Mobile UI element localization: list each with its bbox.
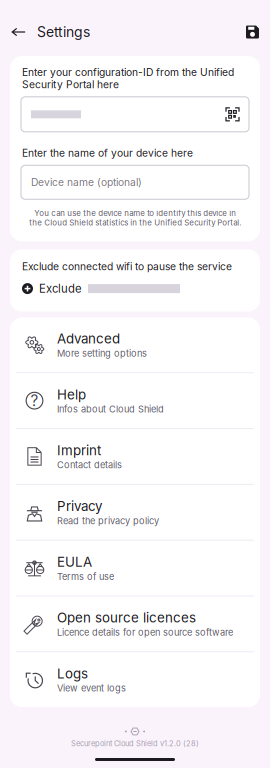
staticText: Enter your configuration-ID from the Uni… xyxy=(22,66,234,91)
staticText: Settings xyxy=(37,23,90,40)
button[interactable]: Advanced xyxy=(10,317,260,372)
button[interactable]: ? xyxy=(10,373,260,428)
staticText: Securepoint Cloud Shield v1.2.0 (28) xyxy=(71,739,199,748)
staticText: Enter the name of your device here xyxy=(22,147,193,159)
staticText: Exclude connected wifi to pause the serv… xyxy=(22,260,232,273)
staticText: Device name (optional) xyxy=(31,176,142,188)
button[interactable]: Imprint xyxy=(10,429,260,484)
staticText: Privacy xyxy=(57,498,102,514)
staticText: View event logs xyxy=(57,683,126,694)
staticText: Terms of use xyxy=(57,571,114,582)
staticText: Help xyxy=(57,386,86,403)
staticText: Logs xyxy=(57,665,88,682)
staticText: Infos about Cloud Shield xyxy=(57,404,164,415)
staticText: You can use the device name to identify … xyxy=(29,208,241,227)
staticText: ? xyxy=(30,391,38,410)
button[interactable]: Save xyxy=(236,17,269,47)
button[interactable]: Open source licences xyxy=(10,596,260,651)
staticText: Exclude xyxy=(39,282,82,295)
staticText: Imprint xyxy=(57,442,101,458)
staticText: Read the privacy policy xyxy=(57,515,159,526)
staticText: More setting options xyxy=(57,348,147,359)
staticText: Open source licences xyxy=(57,610,196,626)
staticText: Contact details xyxy=(57,459,122,470)
staticText: Licence details for open source software xyxy=(57,627,233,638)
button[interactable]: Exclude xyxy=(10,273,260,311)
staticText: Advanced xyxy=(57,331,120,347)
button[interactable]: Back xyxy=(0,17,37,47)
button[interactable]: EULA xyxy=(10,541,260,595)
staticText: EULA xyxy=(57,554,92,570)
button[interactable]: Privacy xyxy=(10,485,260,540)
button[interactable]: Logs xyxy=(10,652,260,707)
